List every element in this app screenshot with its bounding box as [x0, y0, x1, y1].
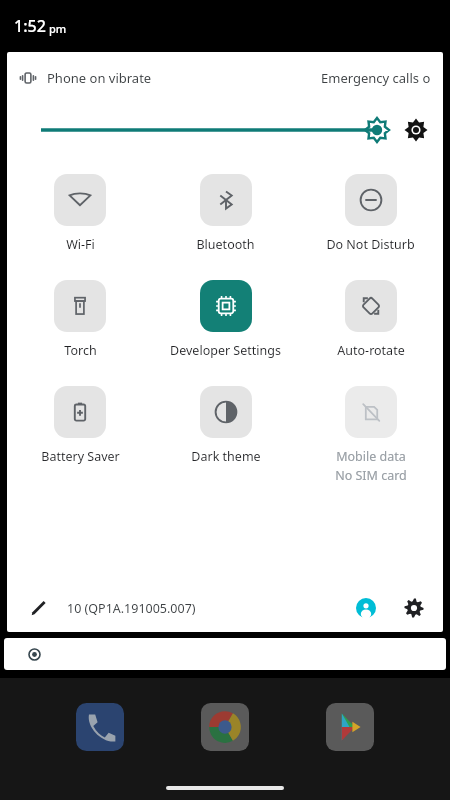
- button[interactable]: Mobile data: [298, 386, 443, 484]
- button[interactable]: Do Not Disturb: [298, 174, 443, 253]
- button[interactable]: Bluetooth: [153, 174, 298, 253]
- staticText: Torch: [64, 342, 97, 359]
- staticText: Emergency calls o: [321, 69, 431, 87]
- button[interactable]: Play Store: [325, 702, 375, 752]
- staticText: Wi-Fi: [66, 236, 95, 253]
- staticText: Developer Settings: [170, 342, 281, 359]
- button[interactable]: Auto brightness: [7, 104, 443, 156]
- staticText: Phone on vibrate: [47, 69, 152, 87]
- staticText: Do Not Disturb: [326, 236, 415, 253]
- button[interactable]: Torch: [7, 280, 153, 359]
- staticText: Battery Saver: [41, 448, 120, 465]
- staticText: pm: [49, 21, 67, 36]
- staticText: Auto-rotate: [337, 342, 405, 359]
- button[interactable]: Auto brightness: [403, 117, 429, 143]
- staticText: 1:52: [14, 15, 46, 37]
- button[interactable]: Developer Settings: [153, 280, 298, 359]
- staticText: 10 (QP1A.191005.007): [67, 600, 196, 617]
- button[interactable]: Auto-rotate: [298, 280, 443, 359]
- staticText: Bluetooth: [196, 236, 255, 253]
- staticText: Mobile data: [336, 448, 406, 465]
- button[interactable]: Settings: [399, 593, 429, 623]
- staticText: No SIM card: [335, 467, 407, 484]
- button[interactable]: Battery Saver: [7, 386, 153, 465]
- button[interactable]: User account: [351, 593, 381, 623]
- button[interactable]: Dark theme: [153, 386, 298, 465]
- button[interactable]: Chrome: [200, 702, 250, 752]
- button[interactable]: Wi-Fi: [7, 174, 153, 253]
- staticText: Dark theme: [191, 448, 261, 465]
- button[interactable]: Edit tiles: [25, 595, 51, 621]
- button[interactable]: Phone: [75, 702, 125, 752]
- button[interactable]: [4, 638, 446, 670]
